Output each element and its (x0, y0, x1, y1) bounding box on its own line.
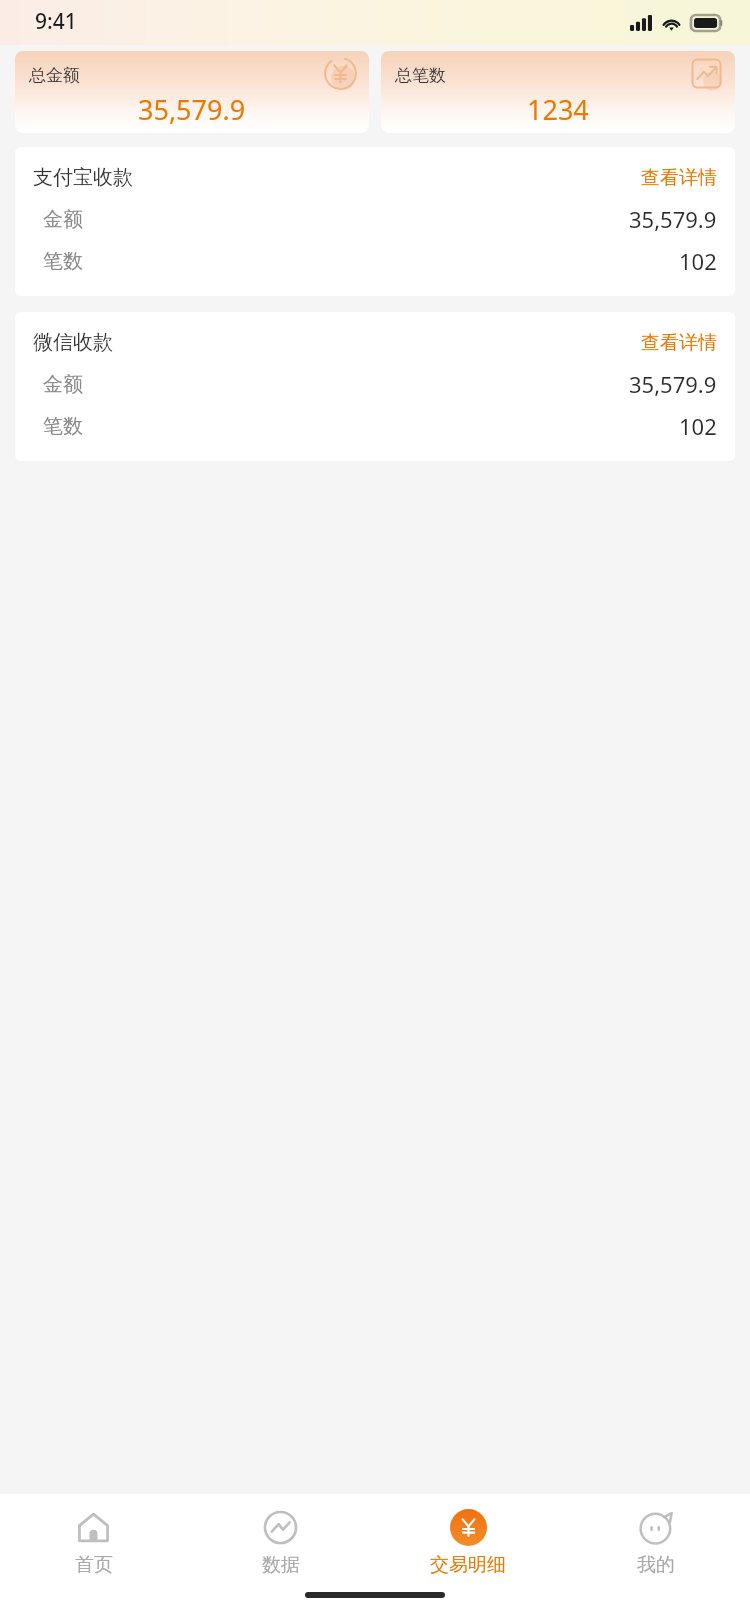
staticText: 笔数 (43, 414, 83, 439)
staticText: 金额 (43, 207, 83, 232)
button[interactable]: 交易明细 (374, 1505, 562, 1581)
button[interactable]: 支付宝收款 (15, 147, 735, 296)
staticText: 笔数 (43, 249, 83, 274)
staticText: 总金额 (29, 65, 80, 86)
other: 交易明细 (450, 1509, 487, 1546)
staticText: 微信收款 (33, 330, 113, 355)
staticText: 金额 (43, 372, 83, 397)
staticText: 数据 (262, 1553, 300, 1577)
other: 数据 (262, 1509, 299, 1546)
button[interactable]: 微信收款 (15, 312, 735, 461)
button[interactable]: 查看详情 (641, 166, 717, 190)
staticText: 交易明细 (430, 1553, 506, 1577)
staticText: 9:41 (35, 7, 77, 36)
staticText: 总笔数 (395, 65, 446, 86)
staticText: 35,579.9 (138, 91, 246, 128)
button[interactable]: 查看详情 (641, 331, 717, 355)
staticText: 35,579.9 (629, 204, 717, 234)
staticText: 首页 (75, 1553, 113, 1577)
staticText: 我的 (637, 1553, 675, 1577)
staticText: 102 (679, 411, 717, 441)
other: 我的 (638, 1509, 675, 1546)
staticText: 1234 (527, 91, 589, 128)
button[interactable]: 总笔数 (381, 51, 735, 133)
staticText: 查看详情 (641, 166, 717, 190)
other: 首页 (75, 1509, 112, 1546)
button[interactable]: 我的 (562, 1505, 750, 1581)
button[interactable]: 总金额 (15, 51, 369, 133)
staticText: 支付宝收款 (33, 165, 133, 190)
staticText: 查看详情 (641, 331, 717, 355)
staticText: 102 (679, 246, 717, 276)
staticText: 35,579.9 (629, 369, 717, 399)
button[interactable]: 数据 (187, 1505, 374, 1581)
button[interactable]: 首页 (0, 1505, 187, 1581)
